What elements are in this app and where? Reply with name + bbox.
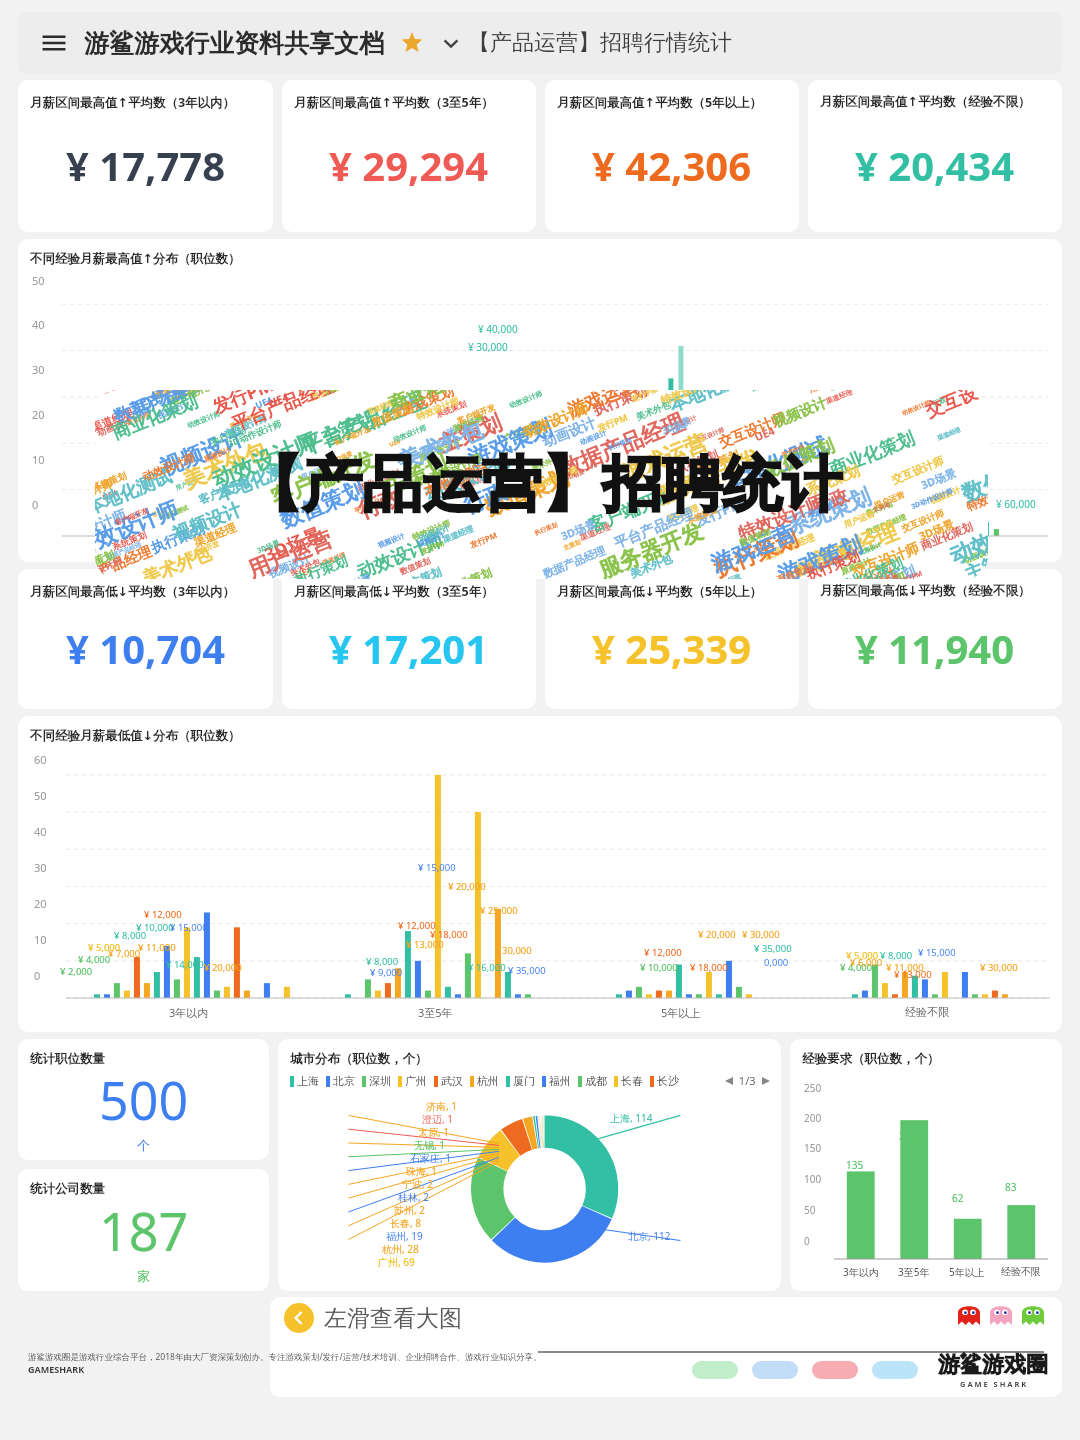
staticText: 214 — [899, 1129, 917, 1143]
staticText: 广州 — [405, 1074, 427, 1088]
button[interactable]: 不同经验月薪最高值↑分布（职位数） — [18, 239, 1062, 562]
staticText: 北京, 112 — [628, 1229, 671, 1243]
staticText: 数值策划 — [398, 555, 432, 577]
staticText: ¥ 42,306 — [592, 138, 752, 192]
staticText: 本地化测试 — [666, 390, 758, 417]
staticText: ¥ 20,000 — [698, 928, 736, 941]
staticText: 20 — [32, 407, 45, 422]
staticText: 150 — [804, 1141, 822, 1155]
staticText: 数值策划 — [276, 475, 368, 534]
staticText: 视频设计 — [771, 394, 829, 432]
staticText: 交互设计师 — [695, 426, 725, 444]
button[interactable]: Previous — [722, 1074, 736, 1088]
button[interactable]: 月薪区间最高低↓平均数（经验不限） — [808, 569, 1062, 709]
staticText: 视频设计 — [169, 498, 245, 547]
staticText: 本地化测试 — [421, 458, 493, 501]
staticText: 广告投放 — [870, 572, 900, 579]
staticText: 游戏策划 — [860, 562, 918, 579]
button[interactable]: 月薪区间最高低↓平均数（3年以内） — [18, 569, 273, 709]
staticText: 187 — [99, 1195, 189, 1266]
staticText: 30 — [34, 860, 47, 875]
staticText: 动效设计师 — [186, 409, 221, 430]
staticText: 50 — [34, 788, 47, 803]
button[interactable]: 统计职位数量 — [18, 1039, 269, 1160]
button[interactable]: Next — [759, 1074, 773, 1088]
staticText: 动画设计 — [417, 522, 451, 544]
staticText: 美术外包 — [530, 454, 560, 473]
staticText: UE4 — [293, 563, 314, 579]
button[interactable]: Menu — [34, 23, 74, 63]
staticText: 商业化策划 — [109, 390, 201, 445]
staticText: ¥ 15,000 — [918, 946, 956, 959]
staticText: 服务器开发 — [653, 443, 765, 511]
button[interactable]: Favorite — [398, 29, 426, 57]
staticText: 渠道经理 — [441, 523, 475, 545]
staticText: 50 — [32, 273, 45, 288]
button[interactable]: 月薪区间最高值↑平均数（3年以内） — [18, 80, 273, 232]
staticText: 执行策划 — [209, 424, 247, 447]
staticText: 美术外包 — [179, 436, 271, 495]
staticText: 行政 — [931, 395, 947, 408]
staticText: ¥ 5,000 — [88, 941, 121, 954]
staticText: 40 — [32, 317, 45, 332]
staticText: 视频设计 — [416, 530, 446, 549]
staticText: UE4 — [253, 393, 274, 411]
button[interactable]: 月薪区间最高低↓平均数（5年以上） — [545, 569, 799, 709]
staticText: 月薪区间最高低↓平均数（3至5年） — [294, 583, 494, 600]
staticText: 动画设计 — [672, 414, 698, 430]
staticText: 客户端开发 — [585, 483, 677, 538]
staticText: ¥ 15,000 — [418, 861, 456, 874]
staticText: 太原, 1 — [418, 1125, 449, 1139]
button[interactable]: Expand — [438, 30, 464, 56]
staticText: 上海 — [297, 1074, 319, 1088]
staticText: 无锡, 1 — [414, 1138, 445, 1152]
button[interactable]: 不同经验月薪最低值↓分布（职位数） — [18, 716, 1062, 1032]
staticText: 系统策划 — [783, 482, 875, 541]
staticText: 0 — [34, 968, 41, 983]
staticText: 20 — [34, 896, 47, 911]
staticText: ¥ 2,000 — [60, 965, 93, 978]
staticText: 原画设计 — [839, 555, 873, 577]
button[interactable]: 经验要求（职位数，个） — [790, 1039, 1062, 1291]
staticText: 城市分布（职位数，个） — [290, 1051, 428, 1067]
staticText: 执行策划 — [149, 520, 207, 558]
staticText: 0 — [804, 1234, 810, 1248]
staticText: 200 — [804, 1111, 822, 1125]
staticText: 济南, 1 — [426, 1099, 457, 1113]
staticText: 月薪区间最高值↑平均数（3至5年） — [294, 94, 494, 111]
staticText: UE4 — [669, 419, 688, 436]
staticText: G A M E S H A R K — [960, 1379, 1027, 1389]
staticText: ¥ 29,294 — [329, 138, 489, 192]
staticText: 本地化测试 — [213, 452, 305, 507]
staticText: 特效设计师 — [95, 476, 115, 510]
staticText: 视频设计 — [156, 423, 248, 482]
staticText: 渠道经理 — [192, 520, 238, 550]
button[interactable]: 左滑查看大图 — [284, 1303, 462, 1333]
staticText: 渠道经理 — [419, 434, 453, 456]
staticText: 商业化策划 — [386, 390, 478, 416]
button[interactable]: 月薪区间最高值↑平均数（3至5年） — [282, 80, 536, 232]
button[interactable]: 统计公司数量 — [18, 1169, 269, 1291]
staticText: 视频设计 — [857, 541, 883, 557]
staticText: ¥ 16,000 — [468, 961, 506, 974]
staticText: 长春 — [621, 1074, 643, 1088]
staticText: 美术外包 — [851, 568, 909, 579]
staticText: ¥ 30,000 — [742, 928, 780, 941]
staticText: ¥ 35,000 — [754, 942, 792, 955]
staticText: 交互设计师 — [850, 539, 922, 579]
button[interactable]: 月薪区间最高值↑平均数（经验不限） — [808, 80, 1062, 232]
staticText: 3年以内 — [843, 1265, 879, 1279]
button[interactable]: 月薪区间最高低↓平均数（3至5年） — [282, 569, 536, 709]
staticText: 本地化测试 — [95, 465, 175, 520]
staticText: ¥ 4,000 — [78, 953, 111, 966]
staticText: 3D场景 — [916, 516, 956, 543]
staticText: 游戏策划 — [774, 530, 866, 579]
button[interactable]: 月薪区间最高值↑平均数（5年以上） — [545, 80, 799, 232]
button[interactable]: 城市分布（职位数，个） — [278, 1039, 781, 1291]
staticText: 动画设计 — [961, 544, 988, 566]
staticText: 商业化策划 — [356, 467, 401, 494]
staticText: 客户端开发 — [185, 539, 220, 560]
staticText: 经验不限 — [1001, 1265, 1041, 1278]
